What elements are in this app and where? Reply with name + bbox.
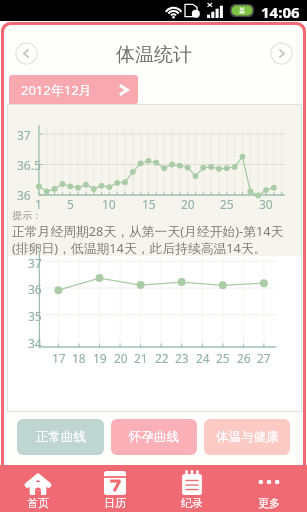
button[interactable]: 怀孕曲线 <box>111 419 197 455</box>
button[interactable]: 2012年12月 <box>9 75 138 104</box>
button[interactable]: 体温与健康 <box>204 419 290 455</box>
staticText: 18 <box>72 350 86 366</box>
staticText: 体温与健康 <box>216 429 279 445</box>
staticText: 22 <box>155 350 169 366</box>
staticText: 20 <box>114 350 128 366</box>
staticText: 24 <box>196 350 210 366</box>
staticText: 34 <box>28 335 42 351</box>
staticText: 14:06 <box>261 2 300 22</box>
staticText: 正常曲线 <box>36 429 86 445</box>
staticText: 20 <box>181 196 195 212</box>
staticText: 提示： <box>12 209 42 222</box>
staticText: 27 <box>257 350 271 366</box>
staticText: (排卵日)，低温期14天，此后持续高温14天。 <box>12 239 267 256</box>
staticText: 怀孕曲线 <box>129 429 179 445</box>
staticText: 19 <box>93 350 107 366</box>
staticText: 5 <box>67 196 74 212</box>
staticText: 26 <box>237 350 251 366</box>
staticText: 正常月经周期28天，从第一天(月经开始)-第14天 <box>12 222 284 239</box>
button[interactable]: 正常曲线 <box>17 419 104 455</box>
staticText: 23 <box>175 350 189 366</box>
staticText: 首页 <box>27 496 49 510</box>
staticText: 36.5 <box>17 157 41 173</box>
staticText: 17 <box>52 350 66 366</box>
staticText: 1 <box>35 196 42 212</box>
staticText: 25 <box>220 196 234 212</box>
staticText: 纪录 <box>181 496 203 510</box>
staticText: 25 <box>216 350 230 366</box>
staticText: 2012年12月 <box>21 81 92 99</box>
staticText: 15 <box>142 196 156 212</box>
staticText: 36 <box>17 187 31 203</box>
staticText: 10 <box>102 196 116 212</box>
button[interactable]: Next month <box>270 42 293 65</box>
button[interactable]: More <box>230 465 307 512</box>
staticText: 体温统计 <box>116 43 192 67</box>
staticText: 35 <box>28 308 42 324</box>
staticText: 37 <box>17 127 31 143</box>
button[interactable]: Records <box>153 465 230 512</box>
staticText: 日历 <box>104 496 126 510</box>
button[interactable]: Home <box>0 465 76 512</box>
staticText: 36 <box>28 281 42 297</box>
staticText: 37 <box>28 255 42 271</box>
button[interactable]: Calendar <box>76 465 153 512</box>
staticText: 30 <box>259 196 273 212</box>
staticText: 更多 <box>258 496 280 510</box>
staticText: 21 <box>134 350 148 366</box>
button[interactable]: Previous month <box>15 42 38 65</box>
